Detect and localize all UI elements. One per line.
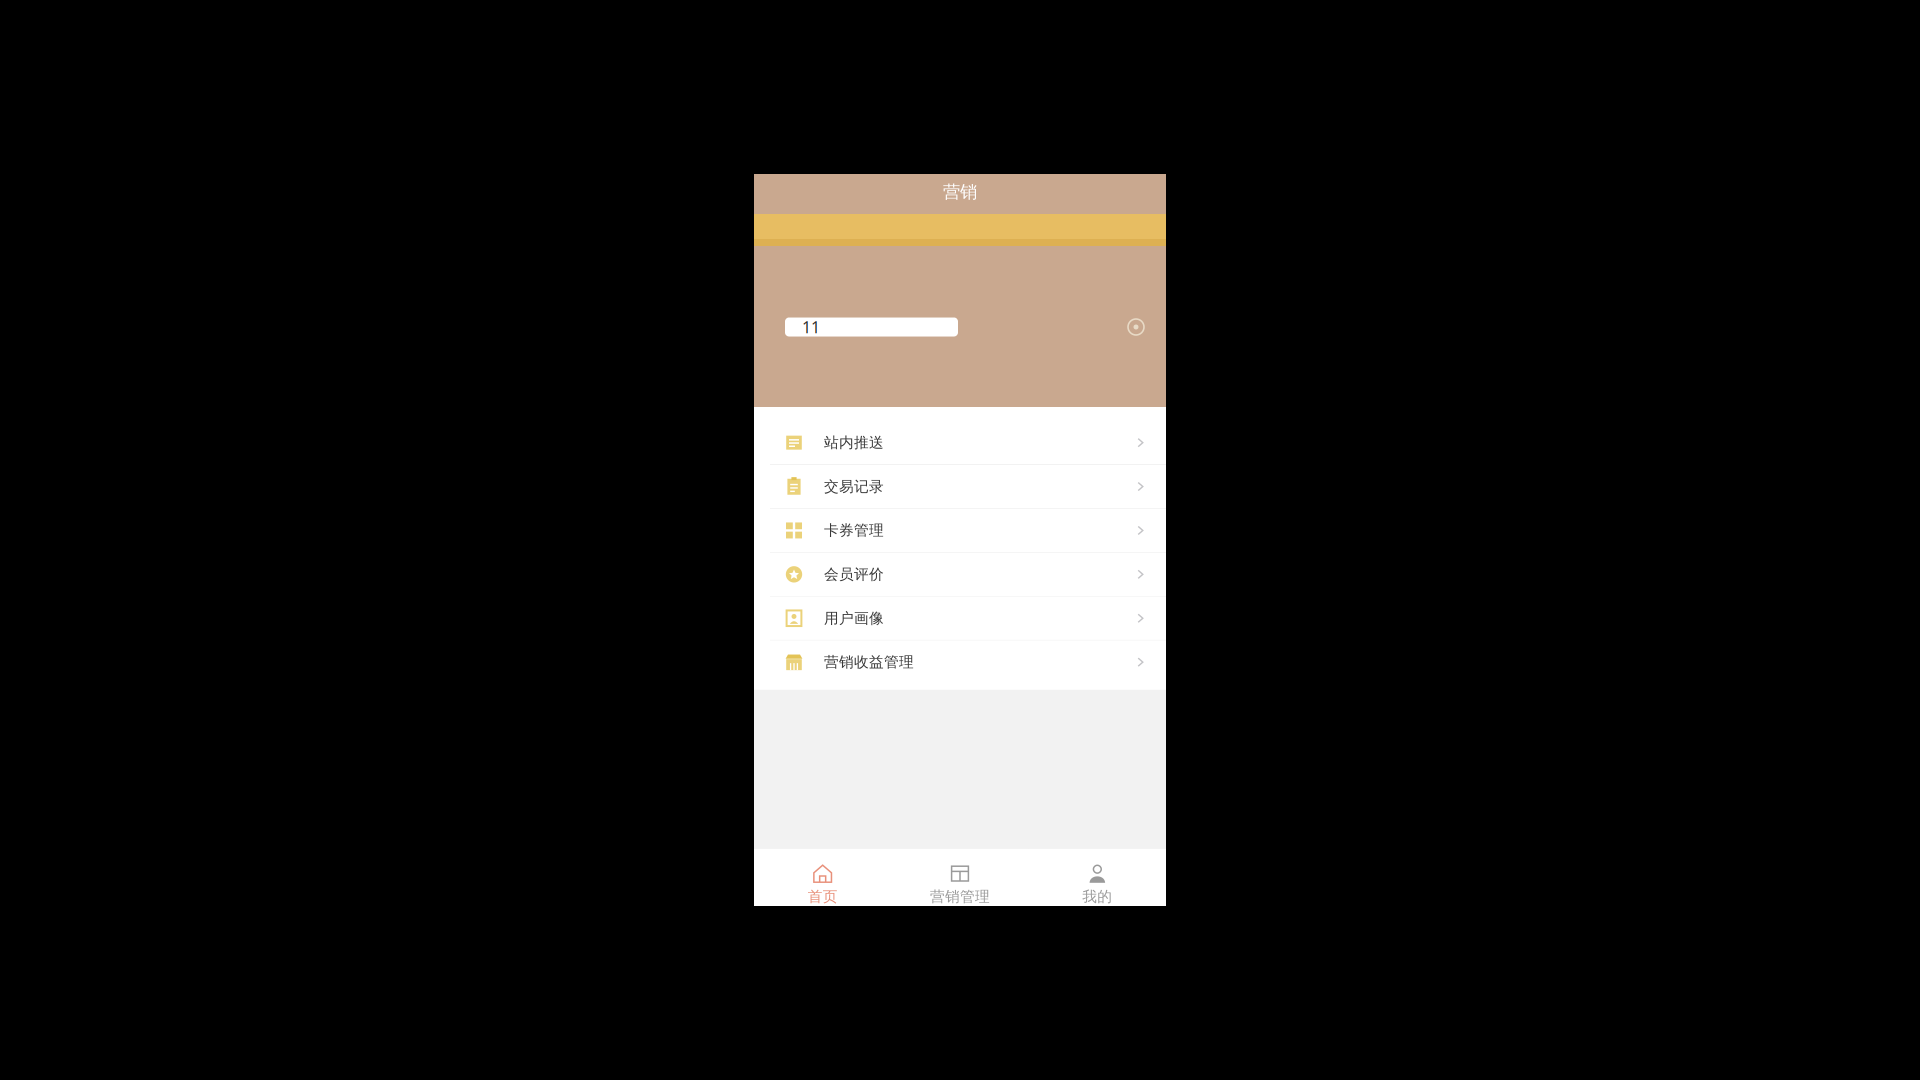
button[interactable]: Scan code xyxy=(1121,312,1151,342)
staticText: 会员评价 xyxy=(824,565,884,583)
button[interactable]: 首页 xyxy=(754,849,891,906)
button[interactable]: 用户画像 xyxy=(754,597,1166,640)
staticText: 卡券管理 xyxy=(824,521,884,539)
staticText: 营销收益管理 xyxy=(824,653,914,671)
button[interactable]: 站内推送 xyxy=(754,421,1166,464)
button[interactable]: 营销收益管理 xyxy=(754,640,1166,684)
staticText: 11 xyxy=(802,316,820,338)
staticText: 营销管理 xyxy=(930,888,990,906)
staticText: 站内推送 xyxy=(824,434,884,452)
staticText: 交易记录 xyxy=(824,477,884,495)
button[interactable]: 营销管理 xyxy=(891,849,1029,906)
button[interactable]: 会员评价 xyxy=(754,553,1166,596)
staticText: 我的 xyxy=(1082,888,1112,906)
button[interactable]: 我的 xyxy=(1029,849,1166,906)
button[interactable]: 卡券管理 xyxy=(754,509,1166,552)
staticText: 营销 xyxy=(943,181,977,203)
staticText: 首页 xyxy=(808,888,838,906)
staticText: 用户画像 xyxy=(824,609,884,627)
button[interactable]: 交易记录 xyxy=(754,465,1166,508)
